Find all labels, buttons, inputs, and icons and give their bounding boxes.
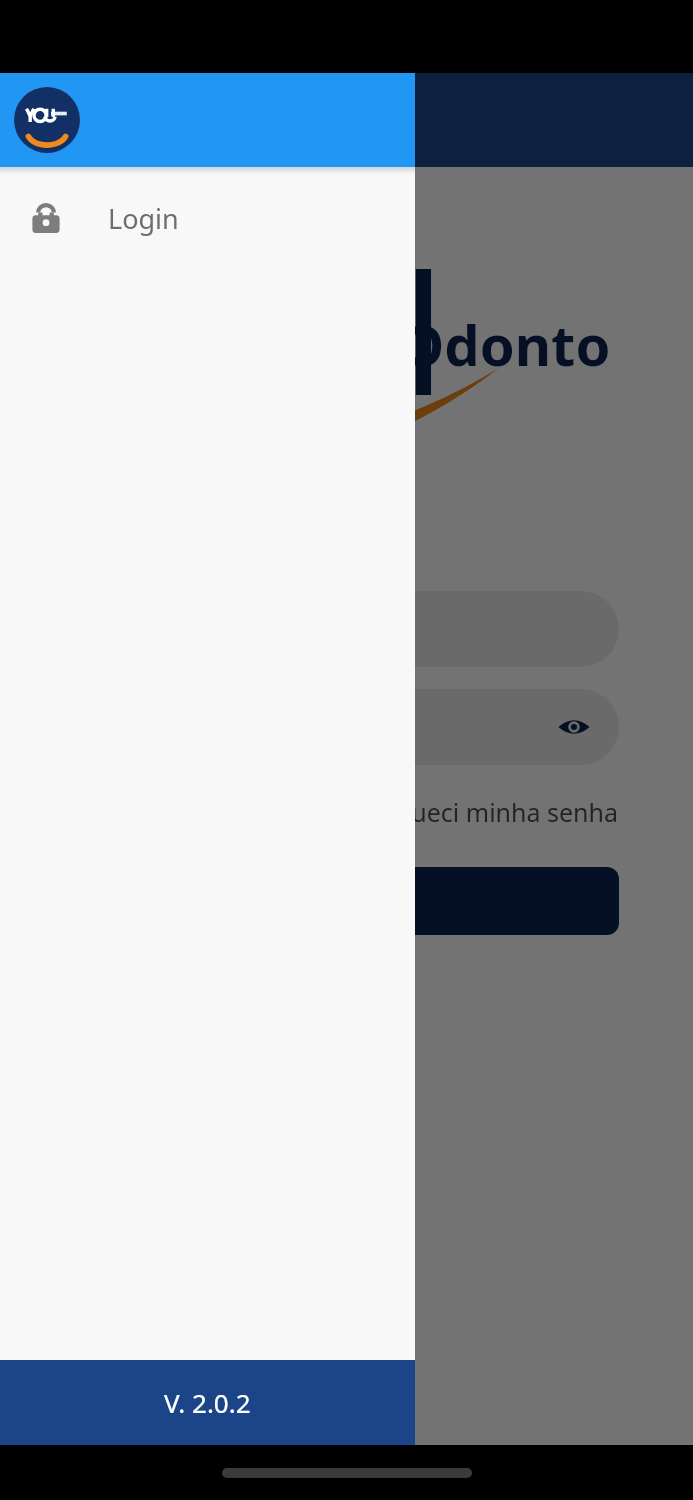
button[interactable]: Login <box>0 174 415 262</box>
staticText: Odonto <box>400 306 611 382</box>
staticText: Esqueci minha senha <box>370 795 619 829</box>
button[interactable] <box>0 167 693 1445</box>
button[interactable]: ENTRAR <box>74 867 619 935</box>
staticText: Login <box>108 200 179 237</box>
button[interactable]: Show password <box>551 704 597 750</box>
button[interactable]: V. 2.0.2 <box>0 1360 415 1445</box>
staticText: V. 2.0.2 <box>164 1385 251 1420</box>
button[interactable]: Show password <box>74 689 619 765</box>
button[interactable] <box>74 591 619 667</box>
button[interactable]: Open navigation menu <box>16 96 64 144</box>
button[interactable]: Esqueci minha senha <box>370 795 619 829</box>
